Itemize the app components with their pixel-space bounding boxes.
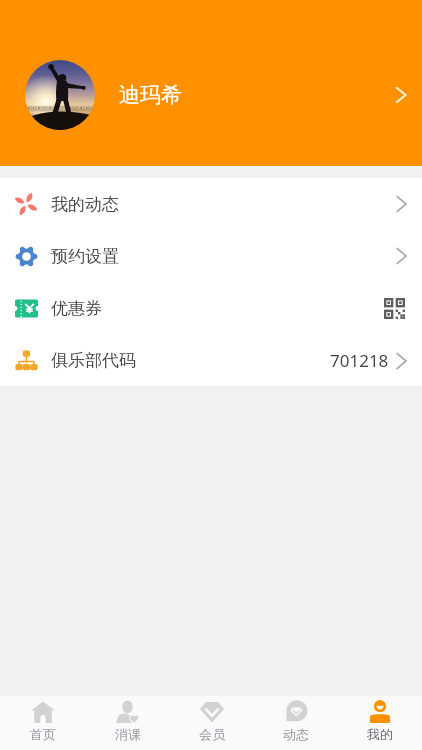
button[interactable]: 预约设置 [0,230,422,282]
staticText: 701218 [330,349,389,372]
button[interactable]: 会员 [170,696,254,750]
other: 头像 [25,60,95,130]
staticText: 首页 [30,726,56,742]
staticText: 我的 [367,726,393,742]
button[interactable]: 首页 [0,696,85,750]
button[interactable]: 俱乐部代码 [0,334,422,386]
staticText: 俱乐部代码 [51,350,136,371]
staticText: 预约设置 [51,246,119,267]
staticText: 迪玛希 [119,82,182,108]
button[interactable]: 扫描二维码 [384,298,405,319]
button[interactable]: 优惠券 [0,282,422,334]
staticText: 会员 [199,726,225,742]
button[interactable]: 消课 [85,696,170,750]
staticText: 优惠券 [51,298,102,319]
button[interactable]: 头像 [0,0,422,166]
button[interactable]: 我的 [338,696,422,750]
staticText: 动态 [283,726,309,742]
button[interactable]: 动态 [254,696,338,750]
button[interactable]: 我的动态 [0,178,422,230]
staticText: 消课 [115,726,141,742]
staticText: 我的动态 [51,194,119,215]
